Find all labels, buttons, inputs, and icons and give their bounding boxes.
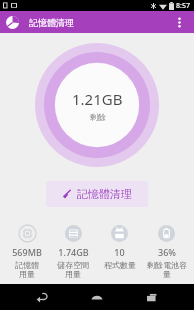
button[interactable]: Home [84, 284, 110, 310]
button[interactable]: Back [29, 284, 55, 310]
staticText: 36% [158, 246, 176, 258]
staticText: 記憶體 用量 [15, 260, 39, 280]
staticText: 569MB [12, 246, 42, 258]
button[interactable]: 569MB [4, 225, 50, 280]
staticText: 1.21GB [72, 89, 123, 109]
staticText: 剩餘電池容 量 [147, 260, 187, 280]
staticText: 剩餘 [90, 112, 106, 122]
staticText: 程式數量 [104, 260, 136, 270]
button[interactable]: 10 [96, 225, 143, 270]
staticText: 儲存空間 用量 [57, 260, 89, 280]
staticText: 8:57 [176, 1, 190, 11]
button[interactable]: 記憶體清理 [46, 181, 148, 207]
staticText: 記憶體清理 [77, 187, 132, 201]
button[interactable]: More options [170, 13, 188, 31]
staticText: 10 [114, 246, 125, 258]
button[interactable]: Recent apps [139, 284, 165, 310]
button[interactable]: 1.74GB [50, 225, 96, 280]
button[interactable]: 36% [143, 225, 190, 280]
staticText: 記憶體清理 [29, 17, 74, 28]
staticText: 1.74GB [58, 246, 89, 258]
